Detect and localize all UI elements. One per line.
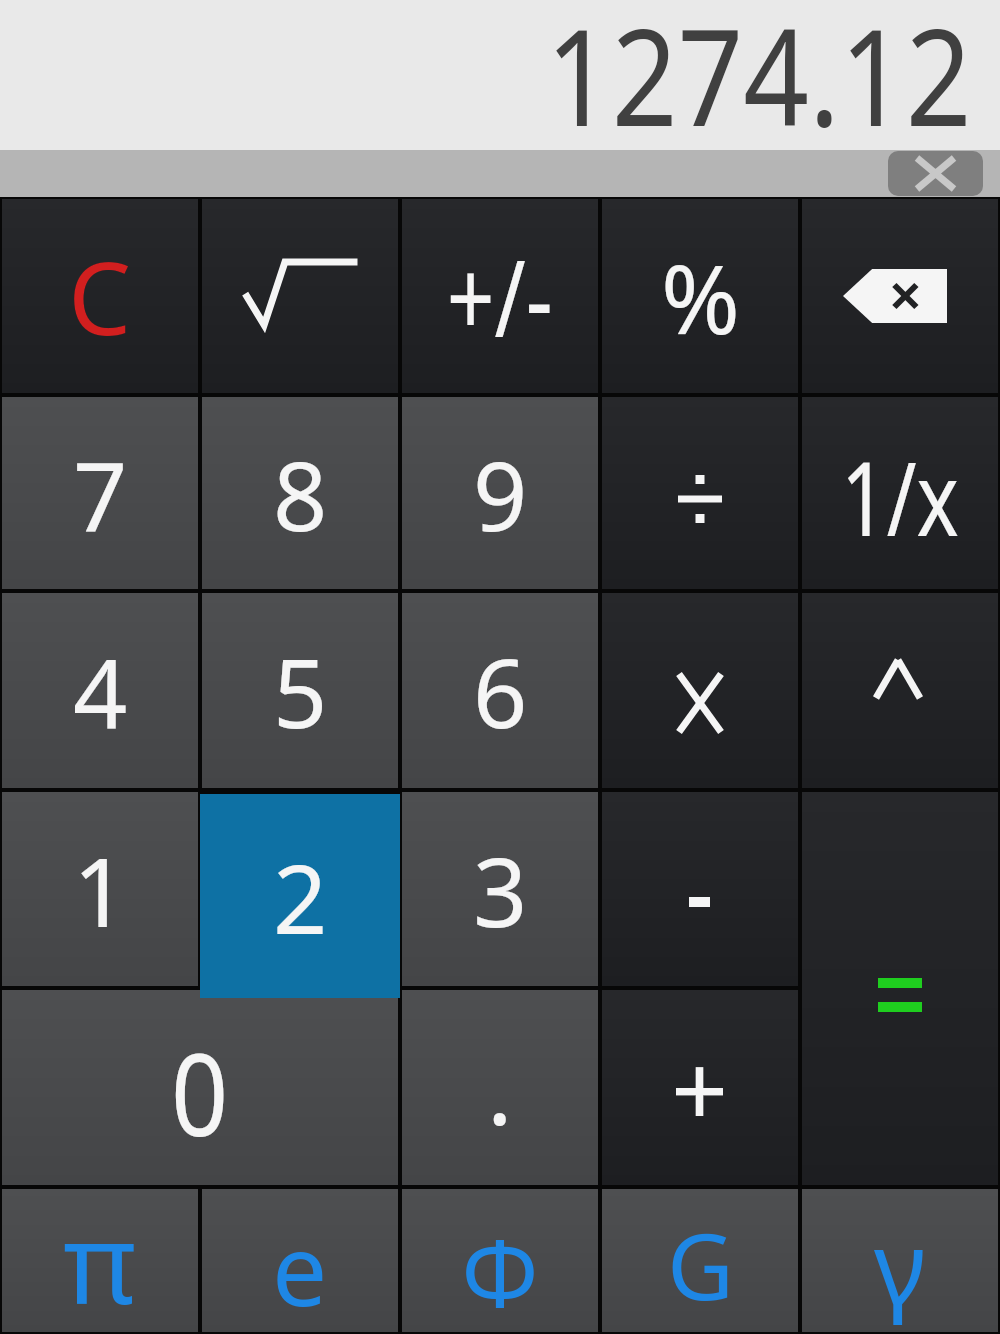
button[interactable]	[802, 593, 998, 788]
button[interactable]: 3	[402, 792, 598, 986]
staticText: 3	[473, 825, 528, 954]
button[interactable]: e	[202, 1189, 398, 1332]
staticText: .	[487, 1023, 513, 1152]
button[interactable]	[802, 199, 998, 393]
button[interactable]: 1	[2, 792, 198, 986]
button[interactable]: Φ	[402, 1189, 598, 1332]
staticText: 1/x	[841, 426, 959, 565]
staticText: Φ	[462, 1206, 539, 1334]
staticText: +/-	[447, 224, 553, 368]
staticText: 8	[273, 429, 328, 558]
button[interactable]: 8	[202, 397, 398, 589]
button[interactable]	[602, 593, 798, 788]
button[interactable]: γ	[802, 1189, 998, 1332]
staticText: G	[667, 1202, 734, 1327]
button[interactable]: π	[2, 1189, 198, 1332]
button[interactable]	[602, 792, 798, 986]
button[interactable]: 0	[2, 990, 398, 1185]
button[interactable]: 9	[402, 397, 598, 589]
staticText: 1	[73, 825, 128, 954]
staticText: e	[272, 1201, 328, 1334]
staticText: 4	[73, 626, 128, 755]
button[interactable]: G	[602, 1189, 798, 1332]
staticText: γ	[874, 1197, 926, 1333]
button[interactable]: 1/x	[802, 397, 998, 589]
staticText: 0	[171, 1015, 229, 1169]
button[interactable]: +	[602, 990, 798, 1185]
staticText: 9	[473, 429, 528, 558]
staticText: +	[671, 1020, 729, 1156]
staticText: 7	[73, 429, 128, 558]
button[interactable]	[602, 397, 798, 589]
button[interactable]: 5	[202, 593, 398, 788]
staticText: %	[661, 232, 740, 361]
staticText: 5	[273, 626, 328, 755]
button[interactable]: 2	[200, 794, 400, 998]
button[interactable]: C	[2, 199, 198, 393]
button[interactable]	[802, 792, 998, 1185]
staticText: 6	[473, 626, 528, 755]
button[interactable]: 7	[2, 397, 198, 589]
button[interactable]: .	[402, 990, 598, 1185]
button[interactable]: 4	[2, 593, 198, 788]
staticText: C	[68, 228, 132, 364]
button[interactable]	[888, 151, 983, 196]
button[interactable]: +/-	[402, 199, 598, 393]
button[interactable]	[202, 199, 398, 393]
staticText: π	[63, 1184, 137, 1327]
button[interactable]: %	[602, 199, 798, 393]
button[interactable]: 6	[402, 593, 598, 788]
staticText: 1274.12	[546, 0, 972, 157]
staticText: 2	[273, 832, 328, 961]
